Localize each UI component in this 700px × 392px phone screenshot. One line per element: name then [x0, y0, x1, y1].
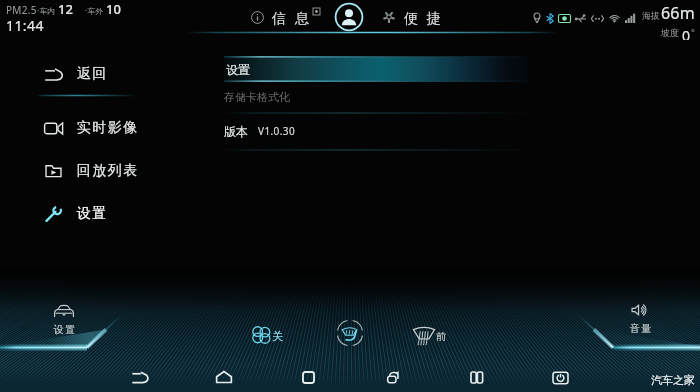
button[interactable]: 便 捷 [404, 8, 444, 27]
staticText: 设置 [226, 62, 250, 77]
button[interactable]: 前 [412, 322, 446, 346]
button[interactable]: 回放列表 [42, 158, 190, 184]
staticText: ° [691, 26, 695, 33]
button[interactable]: Air flow [336, 319, 364, 347]
staticText: ·车外 [85, 5, 104, 16]
button[interactable]: 存储卡格式化 [224, 90, 290, 104]
staticText: 返回 [76, 65, 107, 83]
button[interactable]: 设置 [42, 201, 190, 227]
staticText: 设置 [53, 323, 76, 336]
staticText: 10 [106, 0, 121, 18]
staticText: 前 [436, 330, 446, 343]
staticText: 汽车之家 [651, 373, 695, 387]
button[interactable]: 返回 [42, 61, 190, 87]
button[interactable]: 设置 [224, 57, 528, 82]
staticText: 回放列表 [76, 162, 138, 180]
staticText: 版本 [224, 124, 248, 139]
button[interactable]: Split screen [460, 362, 492, 392]
staticText: PM2.5 [6, 3, 37, 17]
button[interactable]: 版本 [224, 124, 296, 139]
button[interactable]: Back [124, 362, 156, 392]
staticText: 关 [272, 329, 283, 343]
staticText: 实时影像 [76, 119, 138, 137]
button[interactable]: 设置 [40, 304, 88, 336]
button[interactable]: 音量 [616, 304, 664, 335]
button[interactable]: Shortcuts [378, 6, 400, 28]
button[interactable]: Info [246, 6, 268, 28]
button[interactable]: Profile [334, 2, 364, 32]
button[interactable]: Home [208, 362, 240, 392]
button[interactable]: 信 息 [272, 8, 320, 27]
staticText: 坡度 [661, 27, 679, 38]
staticText: 11:44 [6, 16, 44, 35]
staticText: 12 [58, 0, 73, 18]
staticText: 海拔 [642, 10, 660, 21]
button[interactable]: 实时影像 [42, 115, 190, 141]
staticText: 信 息 [272, 8, 312, 27]
button[interactable]: 关 [252, 322, 283, 346]
staticText: V1.0.30 [258, 124, 296, 138]
button[interactable]: Recents [292, 362, 324, 392]
staticText: 设置 [76, 205, 107, 223]
staticText: 66m [661, 2, 695, 24]
staticText: 0 [682, 26, 691, 40]
staticText: 音量 [629, 322, 652, 335]
button[interactable]: Power [544, 362, 576, 392]
staticText: ·车内 [37, 5, 56, 16]
button[interactable]: Switch app [376, 362, 408, 392]
